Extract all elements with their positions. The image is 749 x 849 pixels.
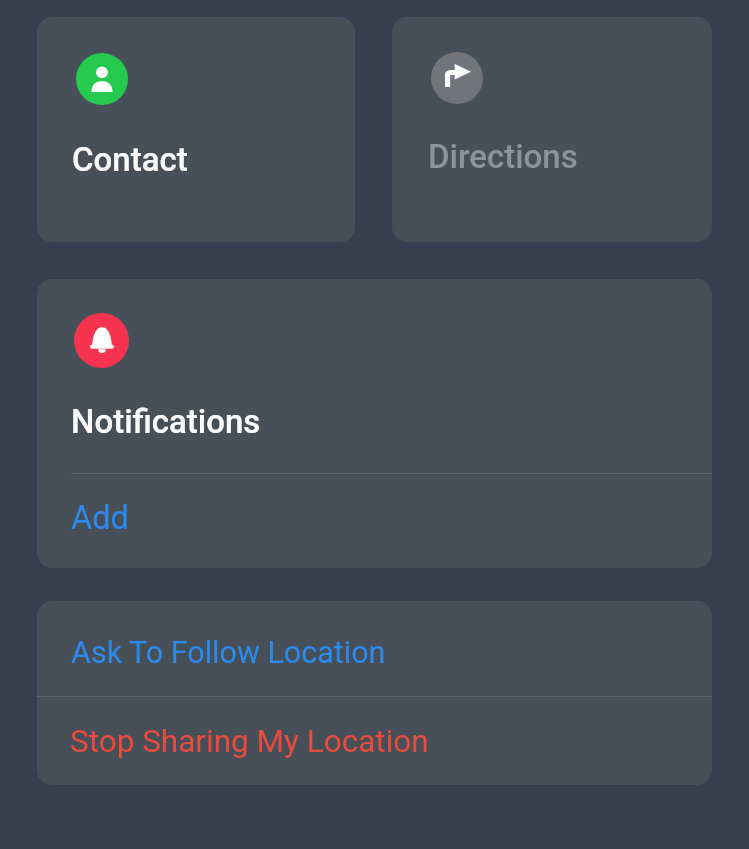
- button[interactable]: Ask To Follow Location: [37, 601, 712, 696]
- staticText: Contact: [72, 140, 188, 179]
- staticText: Notifications: [71, 402, 261, 441]
- button[interactable]: Stop Sharing My Location: [37, 697, 712, 785]
- staticText: Ask To Follow Location: [71, 635, 386, 671]
- button[interactable]: Notifications: [37, 279, 712, 473]
- staticText: Stop Sharing My Location: [70, 723, 429, 760]
- button[interactable]: Directions: [392, 17, 712, 242]
- staticText: Add: [71, 499, 129, 537]
- button[interactable]: Add: [37, 474, 712, 568]
- staticText: Directions: [428, 137, 578, 176]
- button[interactable]: Contact: [37, 17, 355, 242]
